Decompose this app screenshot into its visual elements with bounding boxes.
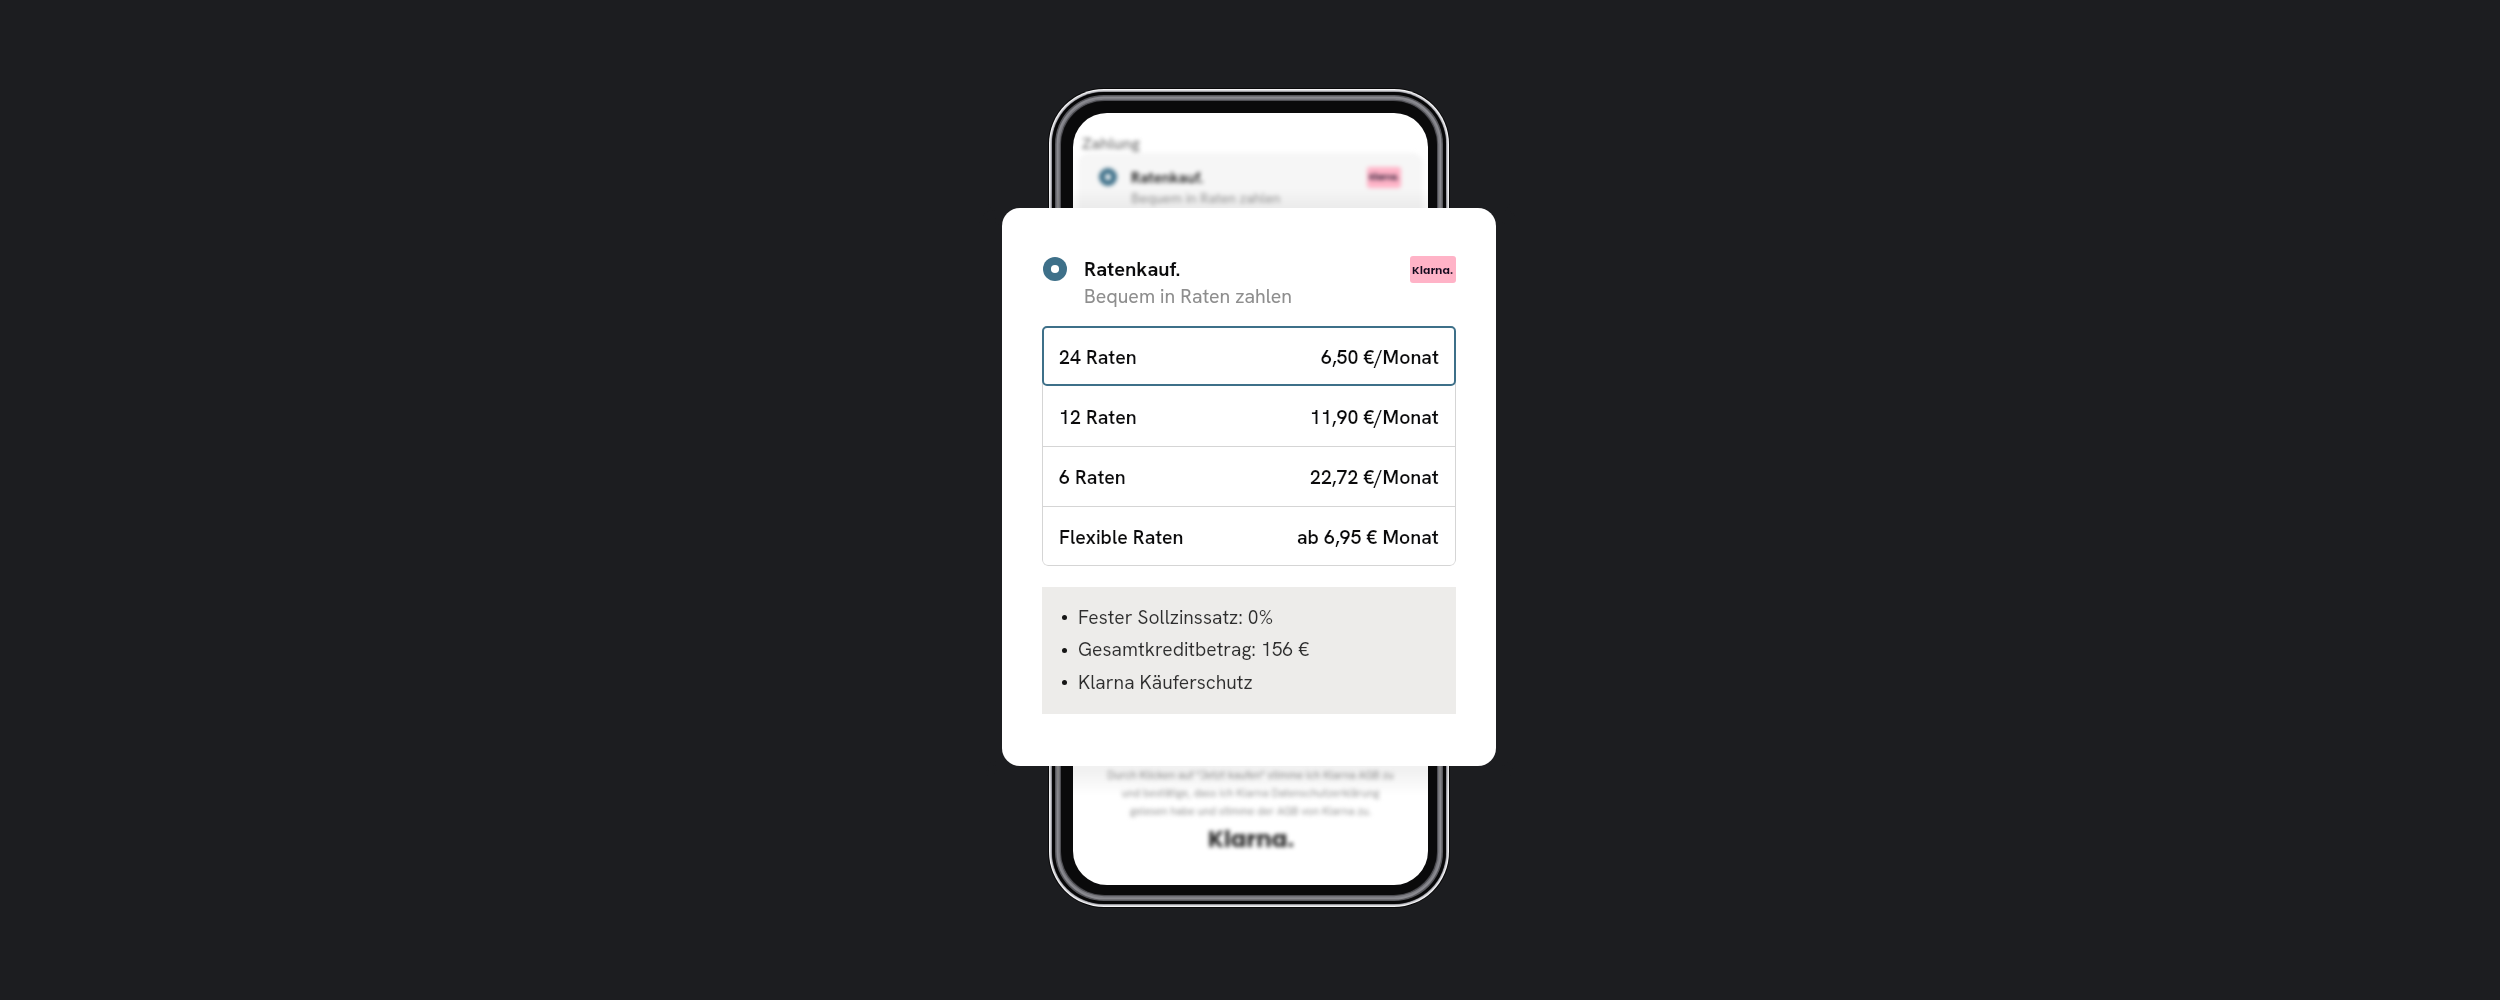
staticText: Klarna Käuferschutz <box>1078 670 1253 695</box>
staticText: Gesamtkreditbetrag: 156 € <box>1078 637 1310 662</box>
staticText: 11,90 €/Monat <box>1310 404 1439 429</box>
staticText: Bequem in Raten zahlen <box>1084 283 1293 308</box>
button[interactable]: 24 Raten <box>1042 326 1456 386</box>
staticText: ab 6,95 € Monat <box>1297 524 1439 549</box>
button[interactable]: Flexible Raten <box>1042 506 1456 566</box>
staticText: Ratenkauf. <box>1084 256 1181 282</box>
staticText: 6 Raten <box>1059 464 1126 489</box>
button[interactable]: Klarna <box>1410 256 1456 283</box>
staticText: Bequem in Raten zahlen <box>1131 189 1281 207</box>
staticText: Ratenkauf. <box>1131 168 1204 188</box>
staticText: Klarna. <box>1412 262 1454 277</box>
staticText: 12 Raten <box>1059 404 1137 429</box>
button[interactable]: 6 Raten <box>1042 446 1456 506</box>
staticText: 22,72 €/Monat <box>1310 464 1439 489</box>
button[interactable]: 12 Raten <box>1042 386 1456 446</box>
staticText: Klarna. <box>1208 823 1294 855</box>
button[interactable]: Ratenkauf. <box>1043 250 1373 308</box>
staticText: Zahlung <box>1082 133 1140 154</box>
staticText: 24 Raten <box>1059 344 1137 369</box>
staticText: Durch Klicken auf "Jetzt kaufen" stimme … <box>1107 768 1394 819</box>
staticText: Klarna. <box>1369 172 1399 183</box>
staticText: Fester Sollzinssatz: 0% <box>1078 605 1274 630</box>
staticText: Flexible Raten <box>1059 524 1184 549</box>
staticText: 6,50 €/Monat <box>1321 344 1439 369</box>
